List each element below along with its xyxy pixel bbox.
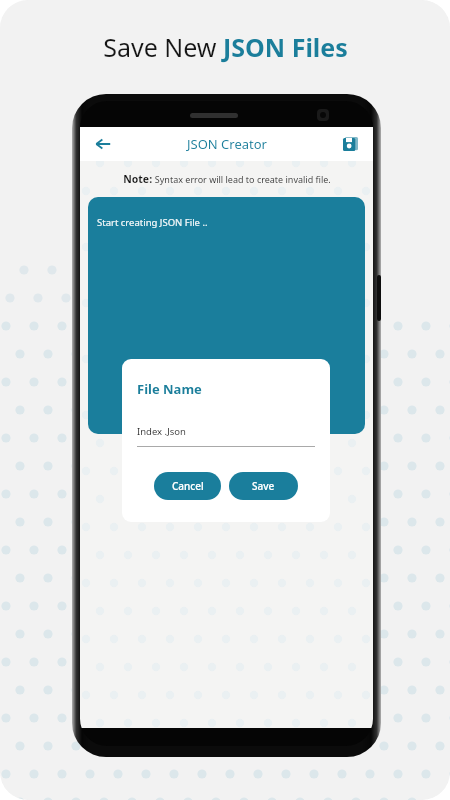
staticText: Save [252,479,275,493]
staticText: Index .Json [137,425,186,438]
staticText: Note: Syntax error will lead to create i… [123,172,331,186]
button[interactable]: Save [337,131,363,157]
button[interactable]: Back [88,129,118,159]
button[interactable]: Start creating JSON File .. [88,197,365,434]
staticText: Start creating JSON File .. [97,216,208,229]
staticText: JSON Creator [187,135,267,153]
button[interactable]: Cancel [154,472,221,500]
button[interactable]: Save [229,472,298,500]
staticText: Cancel [172,479,204,493]
staticText: File Name [137,380,202,398]
staticText: Save New JSON Files [103,30,348,64]
